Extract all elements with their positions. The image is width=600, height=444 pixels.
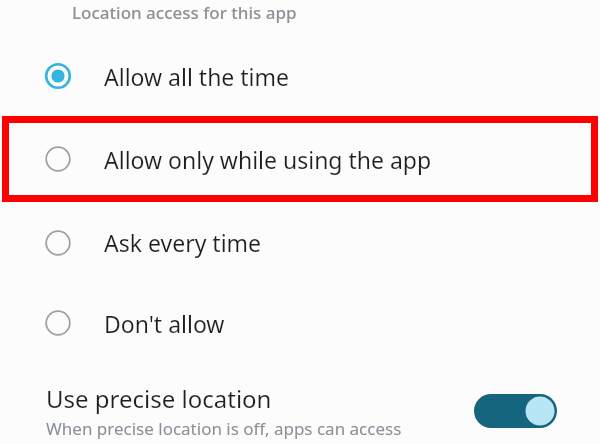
staticText: Ask every time <box>104 227 262 258</box>
button[interactable]: Allow only while using the app <box>0 115 600 203</box>
button[interactable]: Allow all the time <box>0 37 600 115</box>
button[interactable]: Ask every time <box>0 203 600 282</box>
staticText: Allow all the time <box>104 61 290 92</box>
staticText: Location access for this app <box>72 1 297 24</box>
staticText: When precise location is off, apps can a… <box>46 417 402 440</box>
button[interactable]: Use precise location <box>0 382 600 444</box>
button[interactable]: Use precise location toggle <box>474 394 558 434</box>
button[interactable]: Don't allow <box>0 282 600 364</box>
staticText: Allow only while using the app <box>104 144 432 175</box>
staticText: Don't allow <box>104 308 225 339</box>
staticText: Use precise location <box>46 382 272 415</box>
